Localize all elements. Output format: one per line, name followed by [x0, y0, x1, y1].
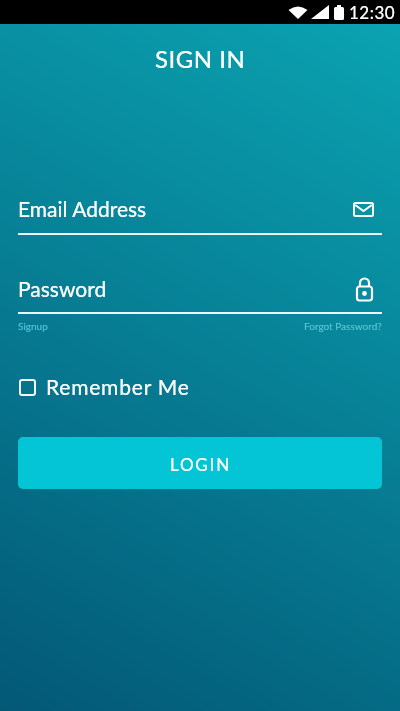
button[interactable]: Password [18, 273, 382, 314]
button[interactable]: Email Address [18, 193, 382, 235]
button[interactable]: LOGIN [18, 437, 382, 489]
staticText: LOGIN [170, 454, 231, 474]
staticText: Email Address [18, 196, 147, 221]
button[interactable]: Forgot Password? [304, 320, 382, 332]
button[interactable]: Remember Me [19, 374, 190, 399]
staticText: SIGN IN [155, 44, 246, 73]
staticText: Password [18, 276, 107, 301]
staticText: 12:30 [349, 2, 396, 22]
button[interactable]: Signup [18, 320, 48, 332]
staticText: Remember Me [46, 374, 190, 399]
